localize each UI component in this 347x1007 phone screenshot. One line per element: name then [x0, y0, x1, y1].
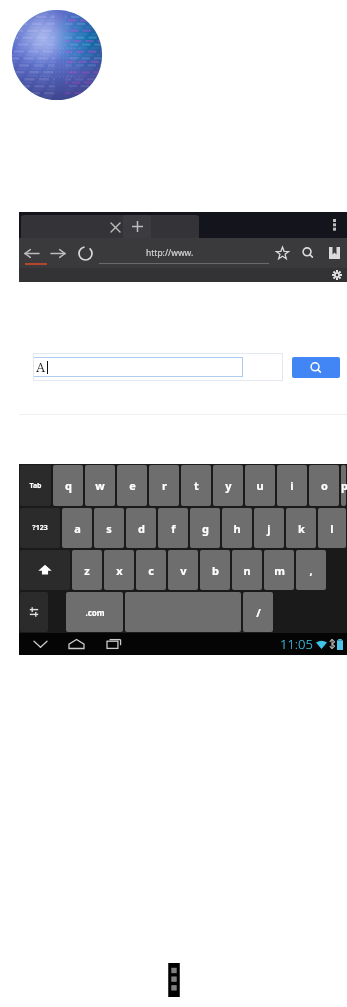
button[interactable]: ?123	[20, 508, 60, 548]
staticText: a	[74, 521, 81, 536]
button[interactable]: k	[286, 508, 316, 548]
staticText: i	[290, 478, 294, 493]
button[interactable]: Home	[57, 633, 95, 655]
staticText: 11:05	[280, 635, 313, 653]
button[interactable]: Back	[19, 238, 45, 268]
staticText: b	[212, 563, 219, 578]
staticText: g	[202, 521, 209, 536]
staticText: l	[330, 521, 334, 536]
button[interactable]: a	[62, 508, 92, 548]
staticText: t	[194, 478, 199, 493]
staticText: x	[116, 563, 123, 578]
staticText: .com	[85, 607, 105, 618]
button[interactable]: Recent apps	[95, 633, 133, 655]
button[interactable]: New tab	[123, 215, 151, 238]
staticText: A	[36, 358, 46, 376]
staticText: y	[225, 478, 232, 493]
button[interactable]: Settings	[330, 268, 344, 282]
staticText: o	[321, 478, 328, 493]
button[interactable]: http://www.	[99, 238, 269, 268]
button[interactable]: m	[264, 550, 294, 590]
button[interactable]: f	[158, 508, 188, 548]
button[interactable]: Input settings	[20, 592, 48, 632]
staticText: v	[180, 563, 187, 578]
button[interactable]: Google Search	[292, 357, 340, 378]
button[interactable]: c	[136, 550, 166, 590]
button[interactable]	[21, 215, 199, 238]
staticText: u	[256, 478, 264, 493]
staticText: z	[84, 563, 90, 578]
button[interactable]: Bookmark this page	[269, 238, 295, 268]
button[interactable]: s	[94, 508, 124, 548]
button[interactable]: b	[200, 550, 230, 590]
button[interactable]: q	[53, 465, 83, 506]
button[interactable]: .com	[66, 592, 123, 632]
button[interactable]: l	[318, 508, 346, 548]
staticText: s	[106, 521, 112, 536]
button[interactable]: y	[213, 465, 243, 506]
staticText: h	[233, 521, 241, 536]
button[interactable]: t	[181, 465, 211, 506]
staticText: /	[256, 605, 261, 620]
button[interactable]: n	[232, 550, 262, 590]
staticText: ?123	[32, 523, 48, 533]
staticText: ,	[309, 563, 313, 578]
button[interactable]: Close tab	[105, 217, 125, 237]
button[interactable]: e	[117, 465, 147, 506]
button[interactable]: ,	[296, 550, 326, 590]
staticText: d	[138, 521, 145, 536]
staticText: f	[171, 521, 176, 536]
staticText: w	[95, 478, 105, 493]
button[interactable]: d	[126, 508, 156, 548]
staticText: n	[243, 563, 251, 578]
staticText: k	[298, 521, 305, 536]
staticText: c	[148, 563, 154, 578]
button[interactable]: Close tab	[19, 212, 347, 655]
button[interactable]: Back	[23, 633, 57, 655]
button[interactable]: o	[309, 465, 339, 506]
button[interactable]: Browser menu	[325, 213, 343, 237]
button[interactable]: r	[149, 465, 179, 506]
staticText: m	[274, 563, 285, 578]
button[interactable]: Reload	[71, 238, 99, 268]
staticText: e	[129, 478, 136, 493]
button[interactable]: j	[254, 508, 284, 548]
button[interactable]: Shift	[20, 550, 70, 590]
staticText: j	[267, 521, 271, 536]
staticText: http://www.	[146, 247, 194, 259]
staticText: Tab	[29, 481, 42, 491]
staticText: r	[162, 478, 167, 493]
button[interactable]: z	[72, 550, 102, 590]
button[interactable]: Search	[295, 238, 321, 268]
button[interactable]: Browser globe icon	[8, 6, 106, 104]
button[interactable]: p	[341, 465, 346, 506]
button[interactable]: x	[104, 550, 134, 590]
staticText: q	[65, 478, 72, 493]
button[interactable]: h	[222, 508, 252, 548]
button[interactable]: /	[243, 592, 273, 632]
button[interactable]: v	[168, 550, 198, 590]
button[interactable]: Bookmarks	[321, 238, 347, 268]
button[interactable]: Forward	[45, 238, 71, 268]
button[interactable]: u	[245, 465, 275, 506]
button[interactable]: Tab	[20, 465, 51, 506]
button[interactable]: A	[33, 353, 283, 381]
button[interactable]: i	[277, 465, 307, 506]
staticText: p	[341, 478, 346, 493]
button[interactable]: More options	[161, 961, 187, 999]
button[interactable]: w	[85, 465, 115, 506]
button[interactable]: g	[190, 508, 220, 548]
